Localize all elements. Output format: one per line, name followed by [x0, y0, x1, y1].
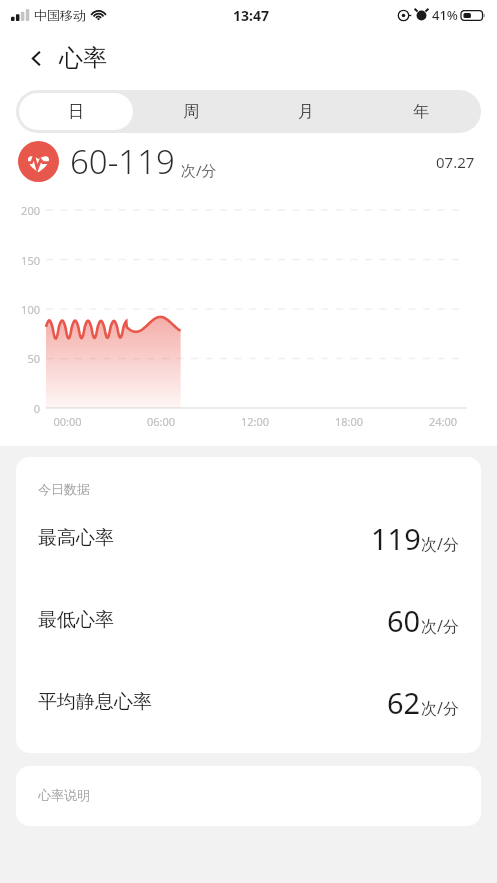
staticText: 200: [0, 203, 40, 218]
staticText: 41%: [432, 6, 458, 24]
staticText: 18:00: [302, 414, 396, 429]
staticText: 13:47: [233, 6, 269, 25]
staticText: 150: [0, 253, 40, 268]
button[interactable]: Back: [16, 38, 56, 78]
button[interactable]: 月: [248, 93, 363, 130]
staticText: 周: [183, 102, 199, 122]
staticText: 100: [0, 302, 40, 317]
staticText: 50: [0, 351, 40, 366]
staticText: 平均静息心率: [38, 690, 152, 714]
staticText: 日: [68, 102, 84, 122]
button[interactable]: 最高心率: [38, 497, 459, 579]
staticText: 62: [387, 683, 421, 722]
button[interactable]: 周: [133, 93, 248, 130]
staticText: 24:00: [396, 414, 490, 429]
staticText: 60-119: [70, 139, 175, 184]
staticText: 0: [0, 401, 40, 416]
staticText: 最高心率: [38, 526, 114, 550]
staticText: 06:00: [114, 414, 208, 429]
staticText: 最低心率: [38, 608, 114, 632]
staticText: 次/分: [181, 160, 217, 180]
button[interactable]: 日: [19, 93, 133, 130]
staticText: 119: [371, 519, 421, 558]
staticText: 年: [413, 102, 429, 122]
staticText: 次/分: [421, 697, 459, 719]
staticText: 07.27: [436, 152, 475, 172]
staticText: 心率说明: [38, 787, 90, 803]
staticText: 12:00: [208, 414, 302, 429]
button[interactable]: 年: [363, 93, 478, 130]
staticText: 今日数据: [38, 481, 90, 497]
button[interactable]: 最低心率: [38, 579, 459, 661]
staticText: 60: [387, 601, 421, 640]
staticText: 月: [298, 102, 314, 122]
staticText: 次/分: [421, 533, 459, 555]
staticText: 心率: [59, 43, 107, 73]
staticText: 00:00: [21, 414, 114, 429]
staticText: 中国移动: [34, 7, 86, 23]
button[interactable]: 平均静息心率: [38, 661, 459, 743]
staticText: 次/分: [421, 615, 459, 637]
